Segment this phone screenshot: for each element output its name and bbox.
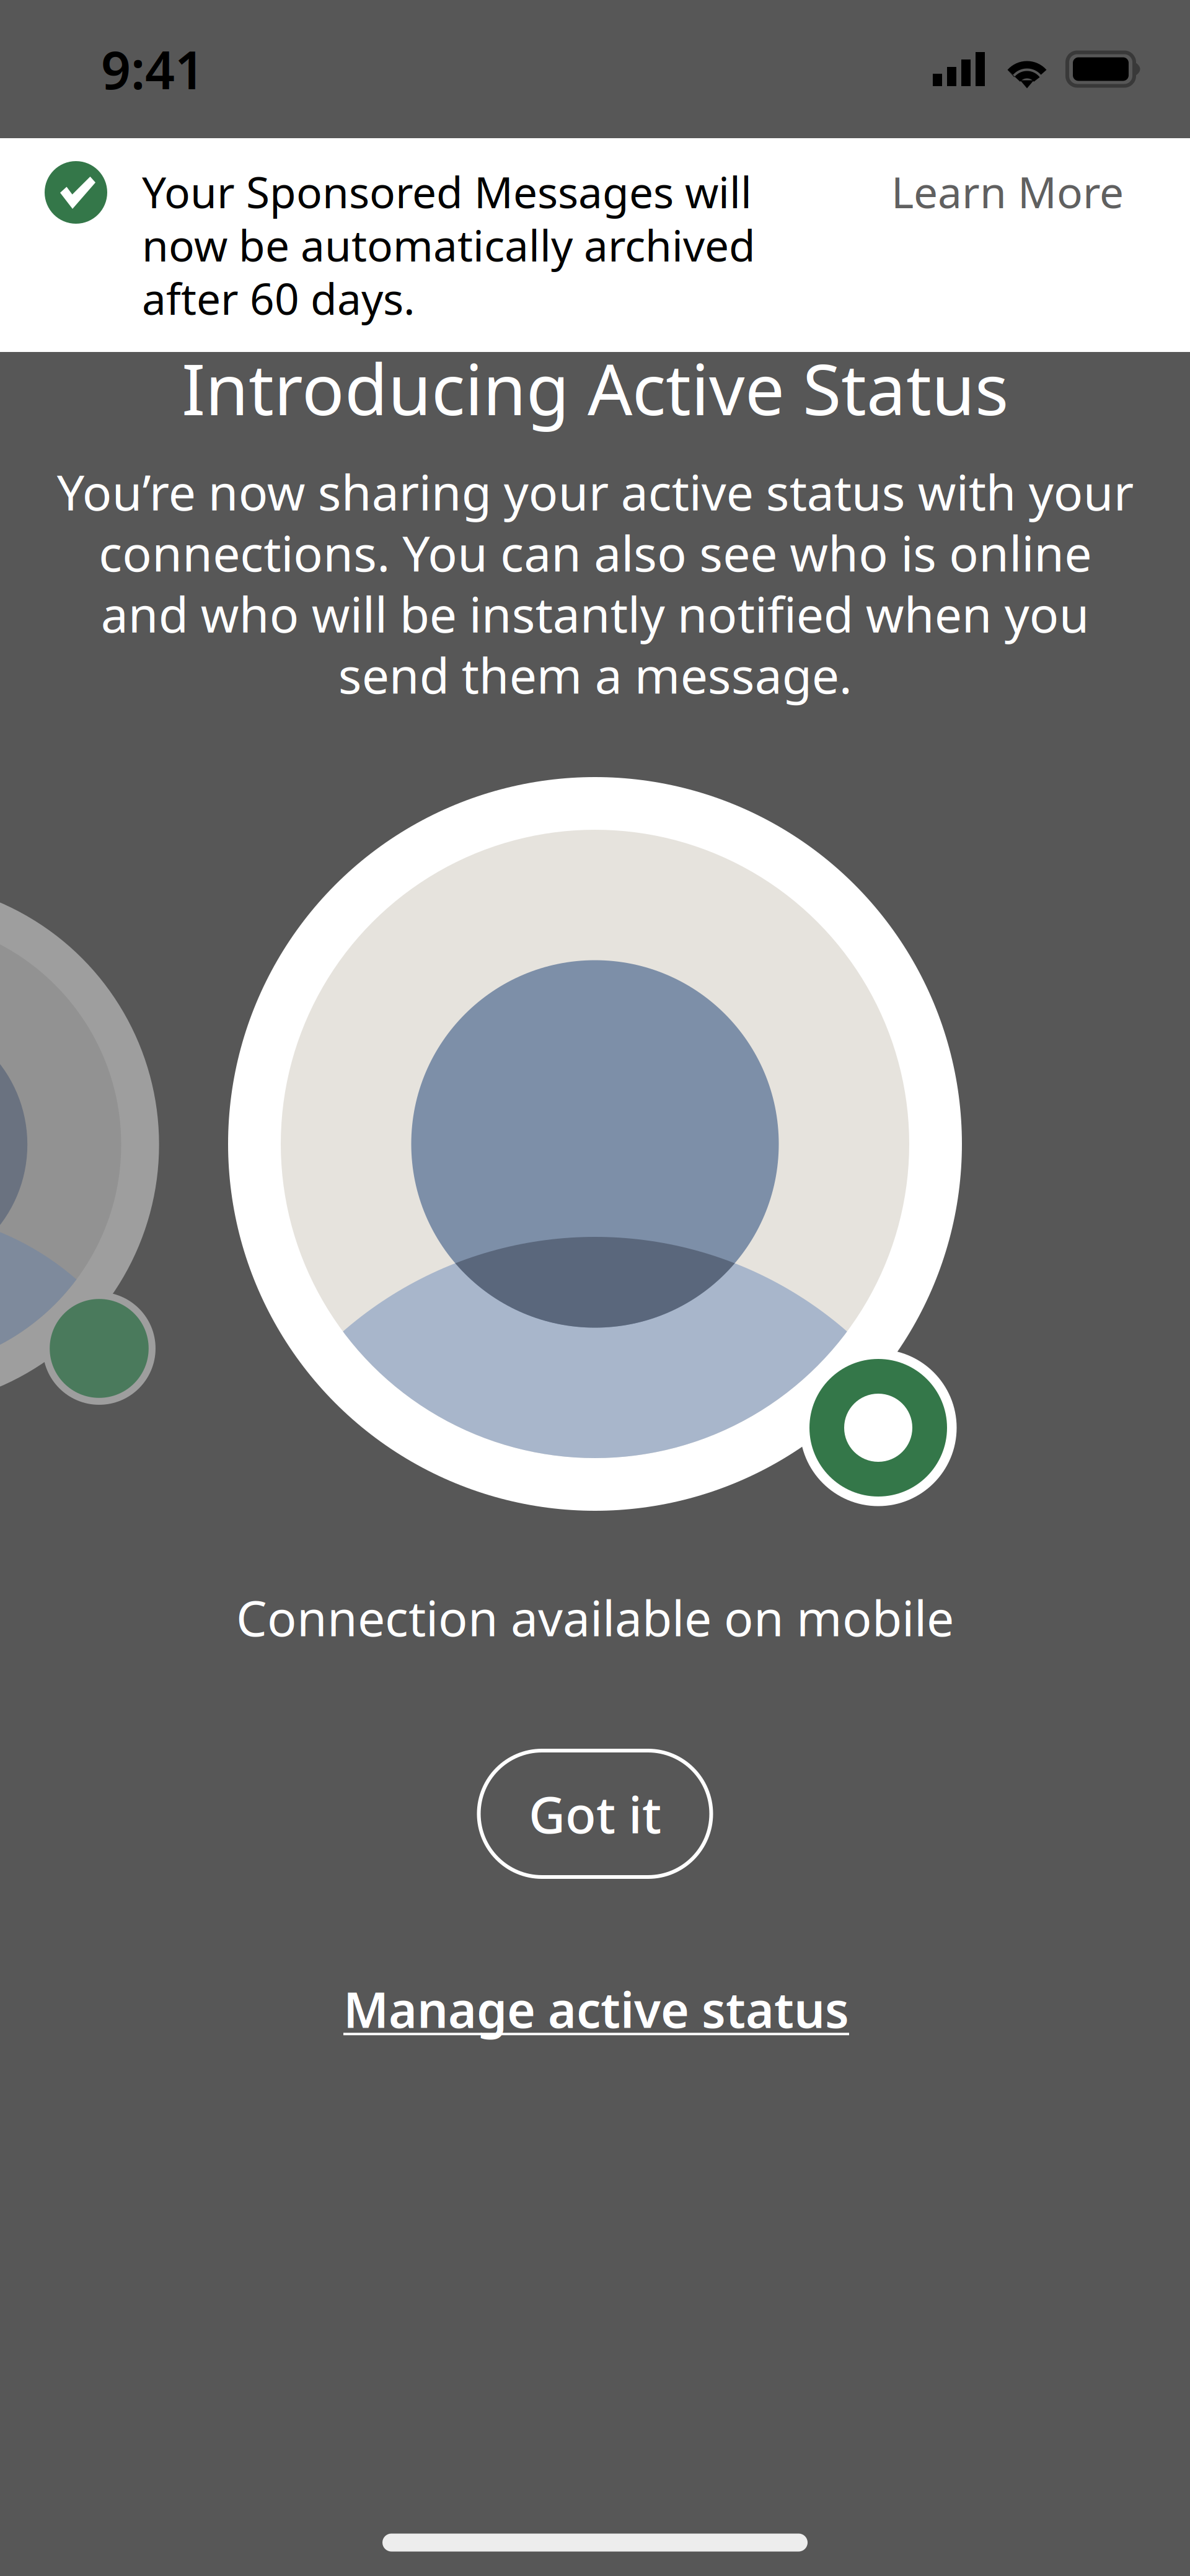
staticText: 9:41: [101, 35, 205, 104]
button[interactable]: Manage active status: [343, 1977, 849, 2041]
staticText: Learn More: [891, 163, 1124, 220]
button[interactable]: Learn More: [891, 161, 1124, 220]
staticText: Your Sponsored Messages will now be auto…: [142, 163, 756, 327]
staticText: Connection available on mobile: [236, 1585, 954, 1650]
staticText: Introducing Active Status: [182, 341, 1008, 435]
staticText: You’re now sharing your active status wi…: [57, 459, 1133, 707]
staticText: Got it: [529, 1780, 661, 1847]
staticText: Manage active status: [343, 1977, 849, 2041]
button[interactable]: Got it: [479, 1751, 711, 1877]
